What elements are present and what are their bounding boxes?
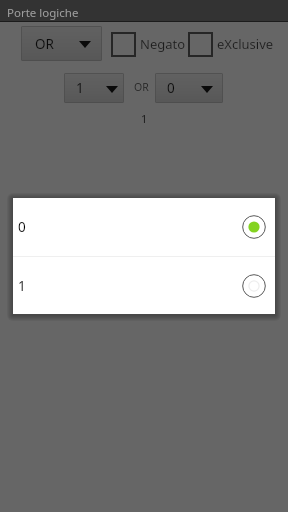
staticText: 1 [18,277,26,295]
button[interactable]: Checkbox [188,32,214,58]
staticText: 0 [18,218,26,236]
button[interactable]: 0 [155,73,223,103]
staticText: eXclusive [217,35,274,53]
button[interactable]: OR [21,26,102,61]
staticText: Porte logiche [7,5,79,21]
button[interactable]: 0 [13,198,275,256]
button[interactable]: 1 [13,257,275,314]
staticText: 0 [167,79,175,97]
staticText: OR [35,35,54,53]
button[interactable]: 1 [64,73,124,103]
button[interactable]: Checkbox [111,32,137,58]
staticText: 1 [141,111,148,126]
staticText: Negato [140,35,186,53]
staticText: OR [134,80,149,94]
staticText: 1 [76,79,84,97]
